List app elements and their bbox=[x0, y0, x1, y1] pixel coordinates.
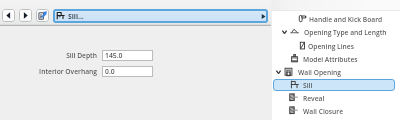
button[interactable]: Sill... bbox=[53, 9, 268, 23]
button[interactable]: Forward bbox=[19, 9, 32, 22]
button[interactable]: Opening Type and Length bbox=[272, 26, 400, 38]
button[interactable]: Pick up parameters bbox=[36, 9, 49, 22]
button[interactable]: Sill bbox=[272, 79, 400, 91]
button[interactable]: Model Attributes bbox=[272, 53, 400, 65]
staticText: 0.0 bbox=[105, 67, 115, 76]
staticText: Sill Depth bbox=[0, 51, 97, 60]
staticText: Sill bbox=[303, 81, 313, 90]
staticText: Model Attributes bbox=[303, 55, 358, 64]
staticText: Opening Lines bbox=[308, 42, 354, 51]
button[interactable]: 145.0 bbox=[102, 50, 153, 61]
button[interactable]: 0.0 bbox=[102, 66, 153, 77]
staticText: Wall Closure bbox=[303, 107, 344, 116]
button[interactable]: Wall Closure bbox=[272, 105, 400, 117]
button[interactable]: Handle and Kick Board bbox=[272, 13, 400, 25]
staticText: Opening Type and Length bbox=[304, 28, 387, 37]
button[interactable]: Wall Opening bbox=[272, 66, 400, 78]
staticText: Sill... bbox=[68, 12, 84, 21]
button[interactable]: Reveal bbox=[272, 92, 400, 104]
button[interactable]: Back bbox=[2, 9, 15, 22]
button[interactable]: Opening Lines bbox=[272, 40, 400, 52]
staticText: Interior Overhang bbox=[0, 67, 97, 76]
staticText: Wall Opening bbox=[298, 68, 342, 77]
staticText: 145.0 bbox=[105, 51, 123, 60]
staticText: Handle and Kick Board bbox=[309, 15, 383, 24]
staticText: Reveal bbox=[303, 94, 325, 103]
